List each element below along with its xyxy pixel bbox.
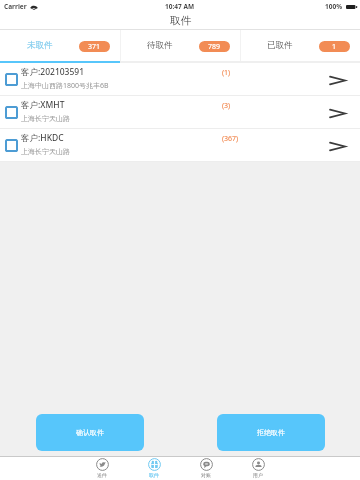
staticText: 未取件 xyxy=(27,40,53,51)
staticText: 上海长宁天山路 xyxy=(21,114,70,123)
staticText: (367) xyxy=(222,134,239,144)
staticText: 上海中山西路1800号兆丰6B xyxy=(21,81,109,91)
staticText: 用户 xyxy=(253,472,263,478)
other: Open details xyxy=(330,142,345,151)
staticText: 客户:XMHT xyxy=(21,99,65,111)
staticText: Carrier xyxy=(4,2,27,11)
button[interactable]: Select customer xyxy=(5,106,18,119)
button[interactable]: Select customer xyxy=(0,129,360,162)
button[interactable]: Select customer xyxy=(0,96,360,129)
button[interactable]: 取件 xyxy=(128,457,180,480)
staticText: 已取件 xyxy=(267,40,293,51)
staticText: 100% xyxy=(325,2,343,11)
button[interactable]: 对账 xyxy=(180,457,232,480)
button[interactable]: 送件 xyxy=(76,457,128,480)
staticText: 上海长宁天山路 xyxy=(21,147,70,156)
button[interactable]: 已取件 xyxy=(240,30,360,61)
staticText: 371 xyxy=(88,42,101,52)
staticText: 客户:202103591 xyxy=(21,66,85,78)
button[interactable]: 用户 xyxy=(232,457,284,480)
staticText: 789 xyxy=(208,42,221,52)
staticText: 确认取件 xyxy=(76,428,104,437)
staticText: 拒绝取件 xyxy=(257,428,285,437)
staticText: (3) xyxy=(222,101,231,111)
button[interactable]: 拒绝取件 xyxy=(217,414,325,451)
staticText: 10:47 AM xyxy=(165,2,195,11)
button[interactable]: 确认取件 xyxy=(36,414,144,451)
button[interactable]: Select customer xyxy=(5,73,18,86)
button[interactable]: 未取件 xyxy=(0,30,120,61)
staticText: 送件 xyxy=(97,472,107,478)
button[interactable]: 待取件 xyxy=(120,30,240,61)
staticText: 对账 xyxy=(201,472,211,478)
other: Open details xyxy=(330,109,345,118)
staticText: 取件 xyxy=(149,472,159,478)
staticText: 取件 xyxy=(170,14,191,27)
staticText: 1 xyxy=(332,42,337,52)
other: Open details xyxy=(330,76,345,85)
button[interactable]: Select customer xyxy=(5,139,18,152)
staticText: 待取件 xyxy=(147,40,173,51)
staticText: (1) xyxy=(222,68,231,78)
staticText: 客户:HKDC xyxy=(21,132,64,144)
button[interactable]: Select customer xyxy=(0,63,360,96)
